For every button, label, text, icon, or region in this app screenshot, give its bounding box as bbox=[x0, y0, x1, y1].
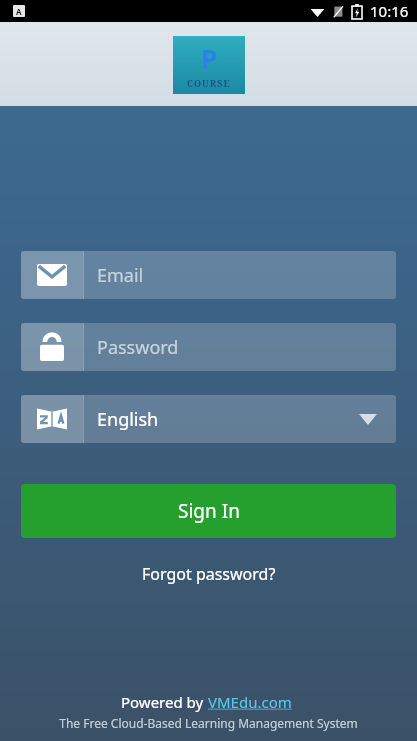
staticText: The Free Cloud-Based Learning Management… bbox=[21, 715, 396, 731]
staticText: Password bbox=[97, 335, 179, 360]
staticText: English bbox=[97, 407, 159, 432]
staticText: P bbox=[201, 41, 218, 76]
staticText: Sign In bbox=[178, 498, 240, 524]
button[interactable]: Language bbox=[21, 395, 396, 443]
staticText: 10:16 bbox=[370, 1, 409, 21]
staticText: COURSE bbox=[187, 77, 231, 89]
staticText: VMEdu.com bbox=[208, 692, 296, 712]
button[interactable]: Forgot password? bbox=[21, 558, 396, 590]
other: Password bbox=[40, 333, 64, 361]
other: Select language bbox=[356, 407, 380, 431]
staticText: A bbox=[16, 6, 22, 17]
staticText: Email bbox=[97, 263, 144, 288]
button[interactable]: Email bbox=[21, 251, 396, 299]
button[interactable]: Password bbox=[21, 323, 396, 371]
staticText: Forgot password? bbox=[142, 563, 276, 585]
staticText: Powered by bbox=[121, 692, 208, 712]
other: Email bbox=[37, 264, 67, 286]
other: Language bbox=[37, 406, 67, 432]
button[interactable]: VMEdu.com bbox=[208, 692, 296, 712]
button[interactable]: Sign In bbox=[21, 484, 396, 538]
